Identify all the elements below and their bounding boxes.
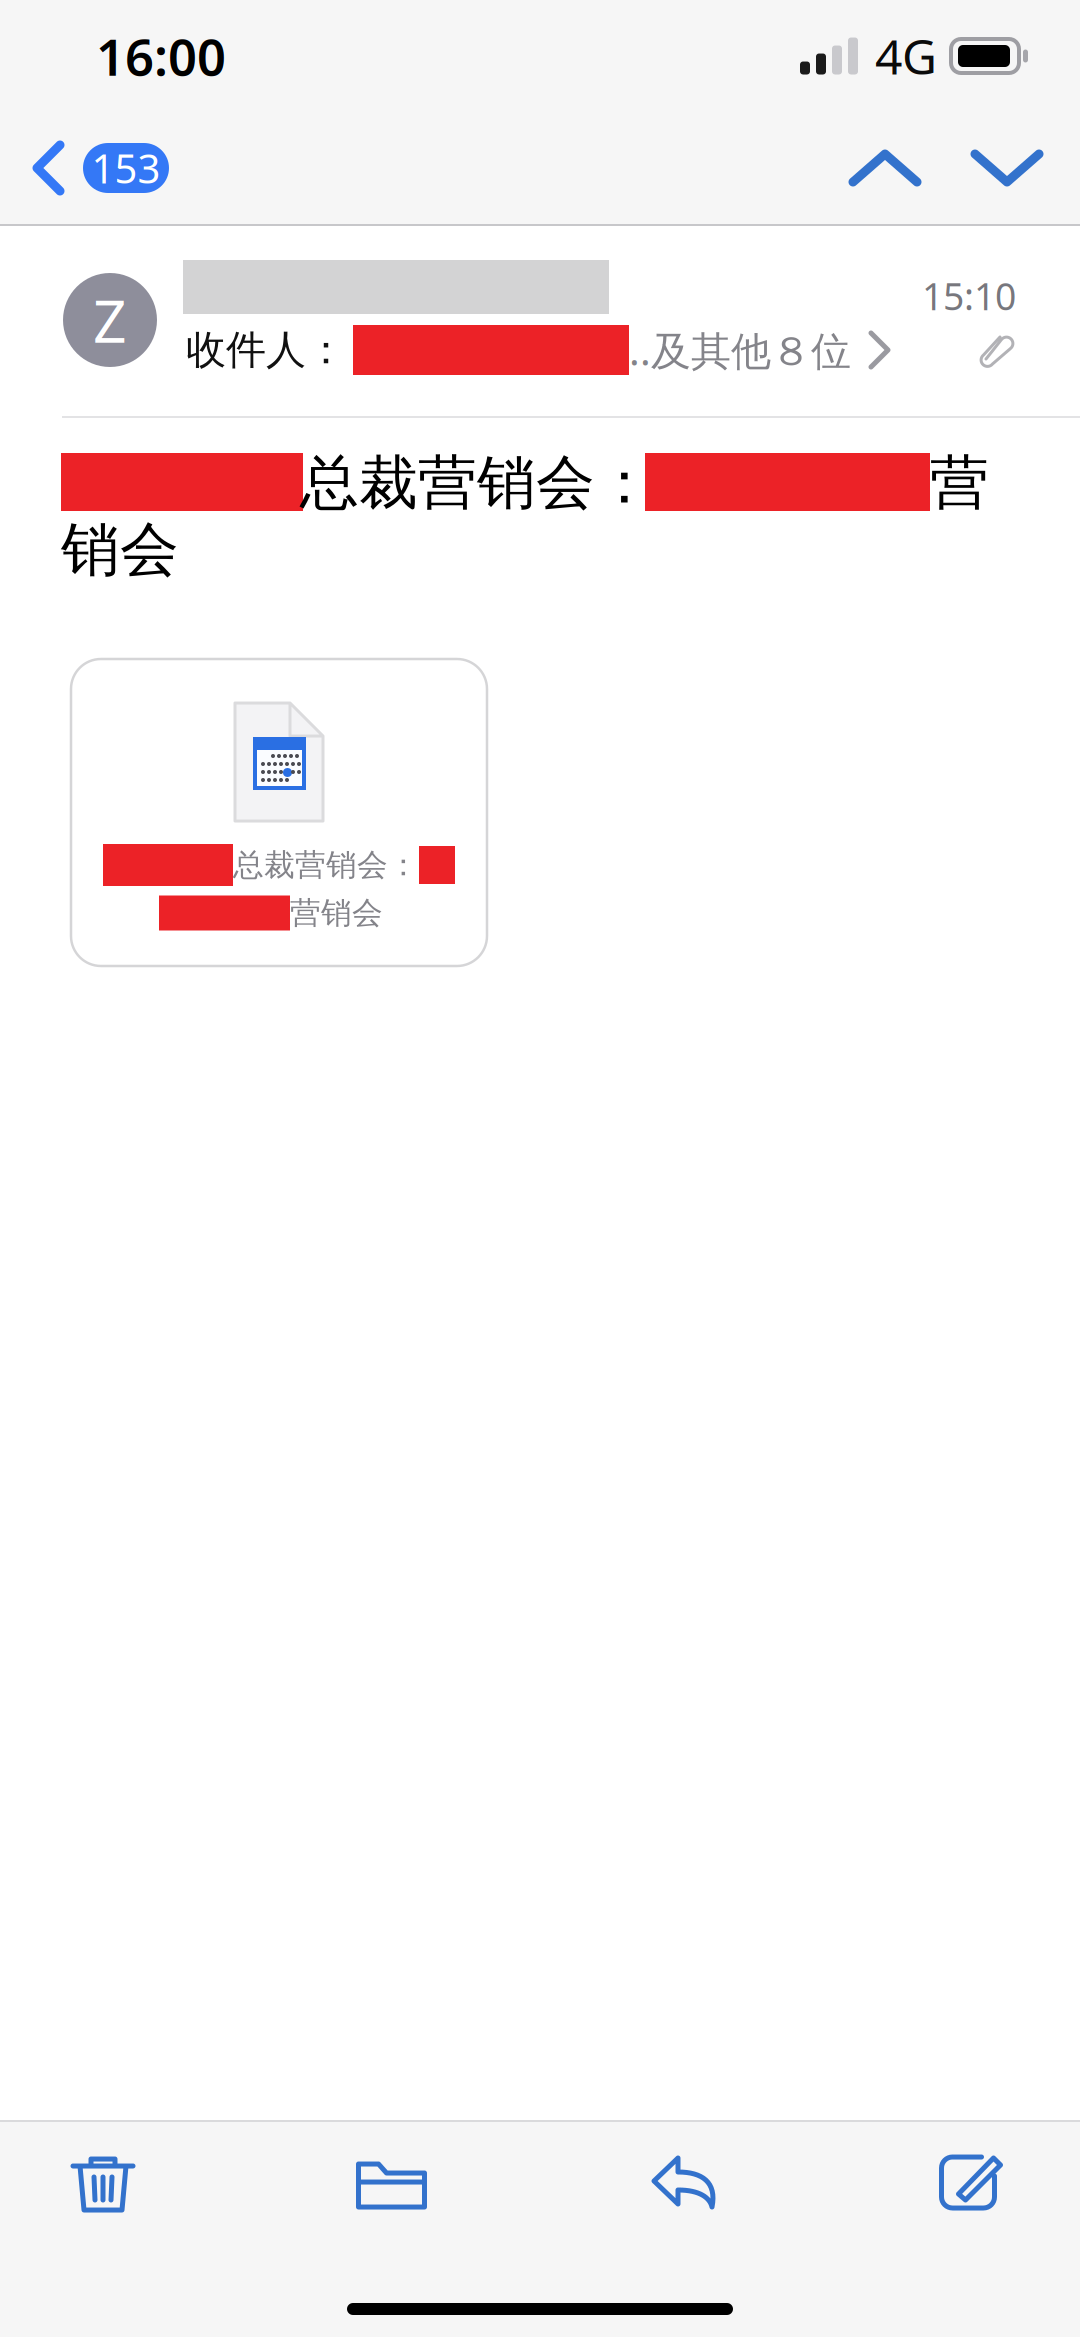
staticText: 15:10 <box>922 271 1016 321</box>
staticText: 营销会 <box>290 894 383 932</box>
staticText: 总裁营销会： <box>300 447 654 519</box>
button[interactable]: Previous message <box>824 127 946 209</box>
button[interactable]: Move to folder <box>317 2127 467 2239</box>
staticText: Z <box>93 281 127 359</box>
staticText: 销会 <box>61 514 179 586</box>
button[interactable]: Reply <box>609 2127 759 2239</box>
staticText: 营 <box>930 447 989 519</box>
button[interactable]: Calendar invitation attachment <box>71 659 487 966</box>
button[interactable]: Delete <box>28 2127 178 2239</box>
staticText: ..及其他８位 <box>629 323 851 376</box>
staticText: 收件人： <box>186 325 346 374</box>
staticText: 总裁营销会： <box>233 846 419 884</box>
button[interactable]: Next message <box>946 127 1068 209</box>
staticText: 16:00 <box>96 22 226 90</box>
button[interactable]: Compose <box>896 2127 1046 2239</box>
staticText: 153 <box>91 141 160 194</box>
staticText: 4G <box>875 24 937 88</box>
button[interactable]: Back to mailbox, 153 messages <box>0 128 189 208</box>
